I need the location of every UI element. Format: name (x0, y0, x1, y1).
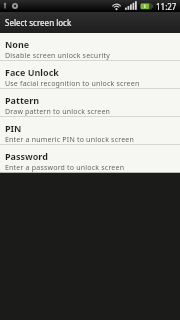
staticText: 11:27 (156, 1, 177, 12)
staticText: Select screen lock (5, 17, 72, 28)
staticText: Enter a numeric PIN to unlock screen (5, 135, 134, 144)
staticText: Disable screen unlock security (5, 51, 110, 60)
staticText: Pattern (5, 94, 40, 106)
button[interactable]: Pattern (0, 89, 180, 116)
button[interactable]: None (0, 33, 180, 60)
staticText: None (5, 38, 30, 50)
staticText: Enter a password to unlock screen (5, 163, 125, 172)
staticText: Face Unlock (5, 66, 59, 78)
staticText: Draw pattern to unlock screen (5, 107, 111, 116)
button[interactable]: PIN (0, 117, 180, 144)
staticText: Use facial recognition to unlock screen (5, 79, 140, 88)
button[interactable]: Password (0, 145, 180, 172)
button[interactable]: Face Unlock (0, 61, 180, 88)
staticText: PIN (5, 122, 22, 134)
staticText: Password (5, 150, 48, 162)
